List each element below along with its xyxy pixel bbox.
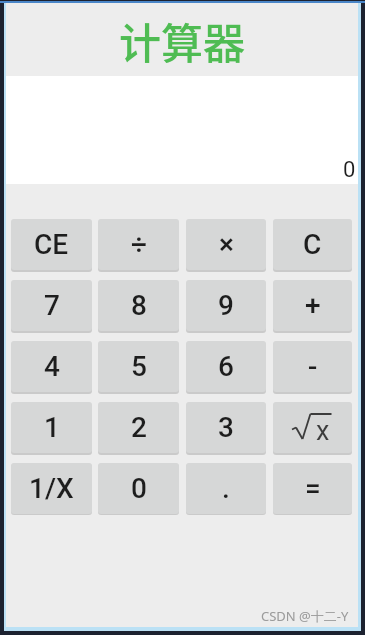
button[interactable]: 1/X	[11, 463, 92, 514]
button[interactable]: 4	[11, 341, 92, 392]
staticText: x	[316, 415, 330, 442]
button[interactable]: +	[273, 280, 352, 331]
staticText: 0	[343, 157, 356, 183]
staticText: ×	[219, 228, 234, 261]
button[interactable]: .	[186, 463, 266, 514]
staticText: 2	[131, 411, 147, 444]
button[interactable]: 2	[98, 402, 179, 453]
staticText: 0	[131, 472, 147, 505]
staticText: 8	[131, 289, 147, 322]
button[interactable]: CE	[11, 219, 92, 270]
button[interactable]: =	[273, 463, 352, 514]
staticText: 7	[44, 289, 60, 322]
button[interactable]: 6	[186, 341, 266, 392]
staticText: 4	[44, 350, 60, 383]
staticText: 计算器	[119, 10, 246, 71]
staticText: 1	[44, 411, 60, 444]
button[interactable]: 1	[11, 402, 92, 453]
button[interactable]: ÷	[98, 219, 179, 270]
staticText: +	[305, 289, 321, 322]
button[interactable]: 0	[98, 463, 179, 514]
button[interactable]: C	[273, 219, 352, 270]
staticText: 6	[218, 350, 234, 383]
staticText: -	[308, 350, 318, 383]
staticText: 5	[131, 350, 147, 383]
staticText: ÷	[131, 228, 147, 261]
button[interactable]: 3	[186, 402, 266, 453]
staticText: CSDN @十二-Y	[261, 607, 349, 625]
staticText: C	[303, 228, 322, 261]
staticText: .	[222, 472, 230, 505]
button[interactable]: x	[273, 402, 352, 453]
button[interactable]: 5	[98, 341, 179, 392]
staticText: 3	[218, 411, 234, 444]
staticText: =	[305, 472, 321, 505]
button[interactable]: -	[273, 341, 352, 392]
button[interactable]: ×	[186, 219, 266, 270]
button[interactable]: 9	[186, 280, 266, 331]
button[interactable]: 8	[98, 280, 179, 331]
staticText: 9	[218, 289, 234, 322]
staticText: 1/X	[29, 472, 74, 505]
button[interactable]: 7	[11, 280, 92, 331]
staticText: CE	[34, 228, 69, 261]
